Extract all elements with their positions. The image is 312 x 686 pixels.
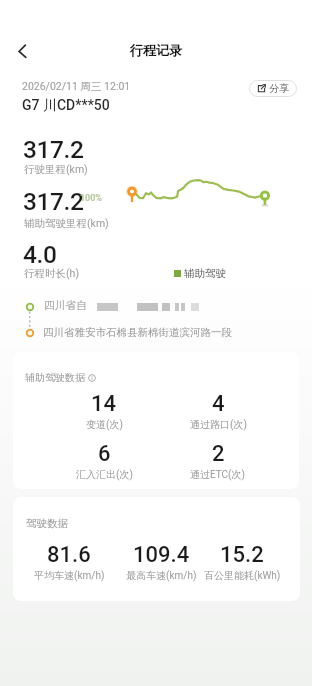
- staticText: 317.2: [23, 135, 84, 163]
- staticText: 4.0: [23, 240, 57, 268]
- staticText: 14: [91, 391, 117, 415]
- staticText: 通过路口(次): [190, 418, 247, 431]
- staticText: 4: [212, 391, 225, 415]
- staticText: 行驶里程(km): [24, 163, 88, 176]
- staticText: 15.2: [220, 542, 264, 566]
- staticText: 汇入汇出(次): [76, 468, 133, 481]
- staticText: 通过ETC(次): [190, 468, 246, 481]
- staticText: 行程时长(h): [24, 267, 80, 280]
- staticText: 2: [212, 441, 225, 465]
- button[interactable]: 分享: [249, 80, 297, 97]
- staticText: 驾驶数据: [26, 517, 68, 530]
- button[interactable]: [8, 38, 34, 64]
- staticText: 2026/02/11 周三 12:01: [22, 80, 131, 93]
- staticText: 四川省自: [44, 299, 88, 313]
- staticText: 最高车速(km/h): [126, 569, 197, 582]
- staticText: 109.4: [133, 542, 190, 566]
- staticText: 平均车速(km/h): [34, 569, 105, 582]
- staticText: 81.6: [47, 542, 91, 566]
- staticText: 100%: [80, 193, 102, 204]
- staticText: 辅助驾驶: [184, 267, 226, 280]
- staticText: 317.2: [23, 187, 84, 215]
- staticText: 辅助驾驶里程(km): [24, 217, 109, 230]
- staticText: 6: [98, 441, 111, 465]
- staticText: 分享: [269, 82, 289, 95]
- staticText: 行程记录: [130, 42, 182, 58]
- staticText: 辅助驾驶数据: [25, 371, 85, 384]
- staticText: 变道(次): [86, 418, 123, 431]
- staticText: G7 川CD***50: [22, 97, 110, 115]
- staticText: 百公里能耗(kWh): [204, 569, 281, 582]
- staticText: 四川省雅安市石棉县新棉街道滨河路一段: [43, 326, 232, 339]
